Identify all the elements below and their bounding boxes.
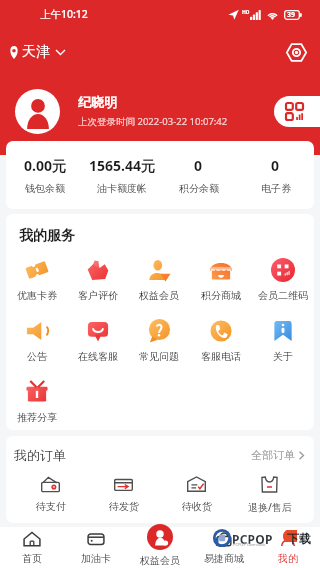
button[interactable]: 客户评价: [67, 258, 128, 302]
staticText: 天津: [22, 43, 50, 61]
button[interactable]: 会员二维码: [252, 258, 314, 302]
staticText: 钱包余额: [25, 182, 65, 195]
staticText: 全部订单: [251, 448, 295, 462]
staticText: PCPOP: [232, 531, 273, 547]
staticText: 常见问题: [139, 350, 179, 363]
button[interactable]: 0: [160, 156, 237, 195]
staticText: 权益会员: [139, 289, 179, 302]
staticText: 待收货: [182, 500, 212, 513]
staticText: 纪晓明: [78, 94, 117, 110]
button[interactable]: 常见问题: [128, 319, 190, 363]
staticText: 权益会员: [140, 554, 180, 567]
button[interactable]: 0: [237, 156, 314, 195]
staticText: 电子券: [261, 182, 291, 195]
button[interactable]: 待发货: [87, 474, 160, 513]
staticText: 客户评价: [78, 289, 118, 302]
button[interactable]: Scan: [284, 40, 308, 64]
staticText: 加油卡: [81, 552, 111, 565]
staticText: 0: [194, 156, 203, 175]
staticText: 公告: [27, 350, 47, 363]
staticText: 上次登录时间 2022-03-22 10:07:42: [78, 115, 228, 128]
staticText: HD: [242, 9, 250, 16]
button[interactable]: 加油卡: [64, 527, 128, 568]
staticText: 易捷商城: [204, 552, 244, 565]
staticText: PCPOP Overclock: [233, 542, 266, 547]
staticText: 在线客服: [78, 350, 118, 363]
button[interactable]: 退换/售后: [233, 474, 306, 514]
staticText: 推荐分享: [17, 411, 57, 424]
staticText: 下载: [287, 531, 311, 546]
button[interactable]: 权益会员: [128, 527, 192, 568]
button[interactable]: 易捷商城: [192, 527, 256, 568]
staticText: 我的: [278, 552, 298, 565]
staticText: 优惠卡券: [17, 289, 57, 302]
button[interactable]: QR code: [274, 96, 320, 127]
staticText: 我的服务: [19, 227, 75, 245]
button[interactable]: 我的: [256, 527, 320, 568]
staticText: 39: [287, 10, 296, 20]
staticText: 0.00元: [24, 156, 66, 175]
staticText: 上午10:12: [40, 7, 88, 21]
button[interactable]: 待支付: [14, 474, 87, 513]
button[interactable]: 推荐分享: [6, 380, 68, 424]
button[interactable]: 全部订单: [251, 448, 304, 462]
button[interactable]: 客服电话: [190, 319, 252, 363]
staticText: 待支付: [36, 500, 66, 513]
button[interactable]: 权益会员: [128, 258, 190, 302]
staticText: 积分余额: [179, 182, 219, 195]
staticText: 首页: [22, 552, 42, 565]
staticText: 我的订单: [14, 447, 66, 463]
button[interactable]: 0.00元: [6, 156, 83, 195]
button[interactable]: 积分商城: [190, 258, 252, 302]
button[interactable]: 关于: [252, 319, 314, 363]
button[interactable]: 待收货: [160, 474, 233, 513]
staticText: 退换/售后: [248, 500, 292, 514]
staticText: 会员二维码: [258, 289, 308, 302]
staticText: 客服电话: [201, 350, 241, 363]
button[interactable]: 天津: [9, 43, 65, 61]
staticText: 待发货: [109, 500, 139, 513]
staticText: 油卡额度帐: [97, 182, 147, 195]
staticText: 1565.44元: [89, 156, 155, 175]
button[interactable]: 优惠卡券: [6, 258, 67, 302]
button[interactable]: 公告: [6, 319, 67, 363]
staticText: 关于: [273, 350, 293, 363]
staticText: 0: [271, 156, 280, 175]
staticText: 积分商城: [201, 289, 241, 302]
button[interactable]: 首页: [0, 527, 64, 568]
button[interactable]: 1565.44元: [83, 156, 160, 195]
button[interactable]: 在线客服: [67, 319, 128, 363]
